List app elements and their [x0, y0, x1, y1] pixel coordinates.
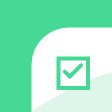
- button[interactable]: Task complete: [0, 0, 112, 112]
